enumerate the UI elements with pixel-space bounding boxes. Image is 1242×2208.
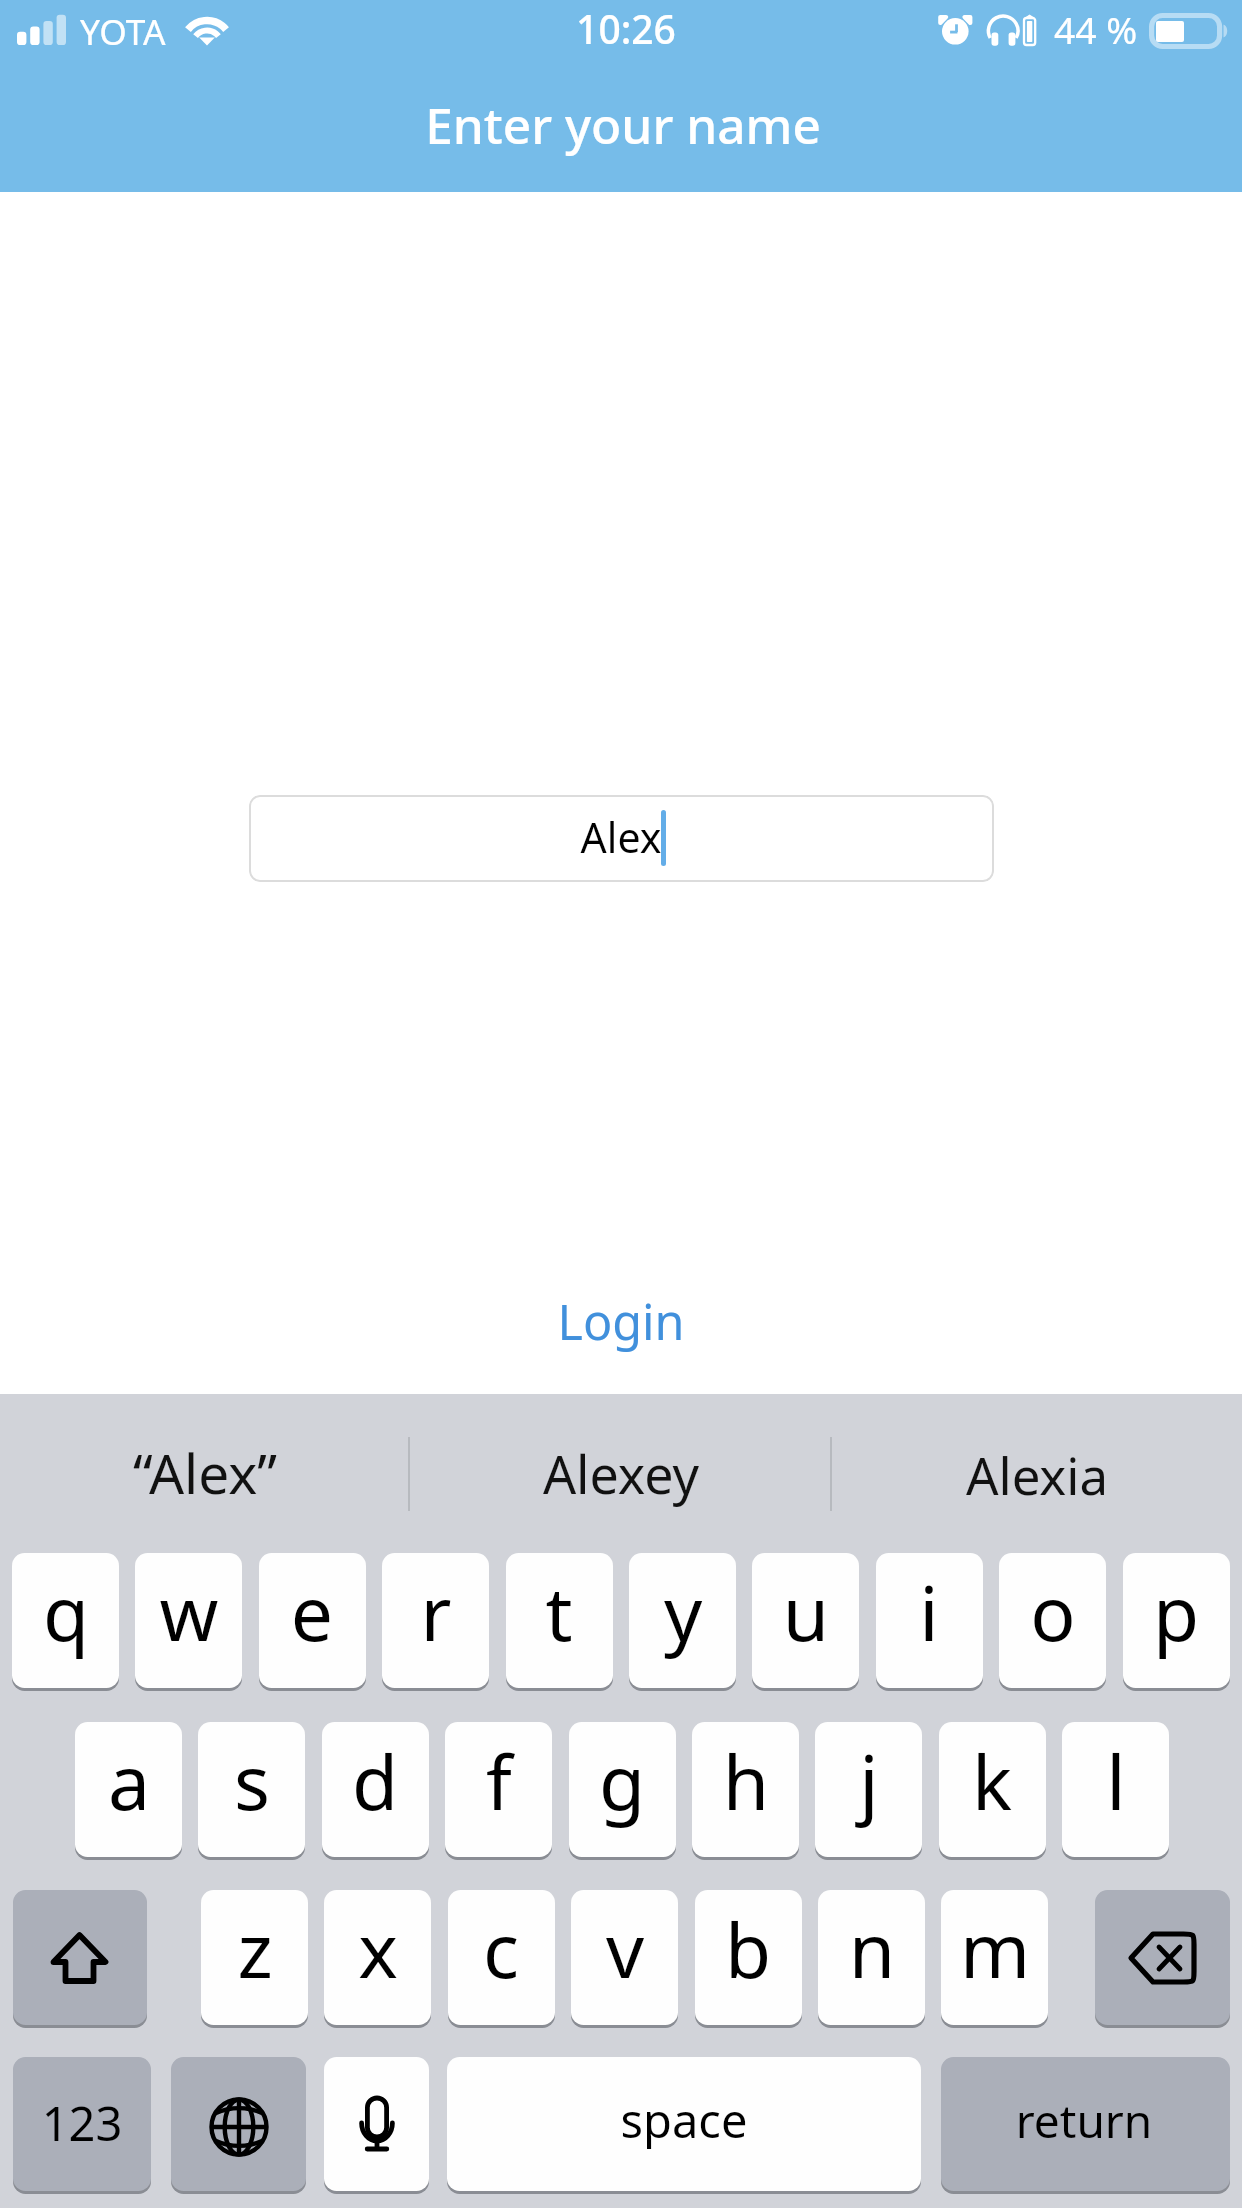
button[interactable] xyxy=(1123,1553,1230,1691)
button[interactable] xyxy=(0,1394,414,1544)
staticText: e xyxy=(212,1561,412,1663)
staticText: i xyxy=(829,1561,1029,1663)
button[interactable]: Change keyboard xyxy=(171,2057,306,2194)
button[interactable] xyxy=(201,1890,308,2028)
button[interactable] xyxy=(75,1722,182,1860)
button[interactable] xyxy=(818,1890,925,2028)
staticText: p xyxy=(1076,1561,1242,1663)
staticText: “Alex” xyxy=(0,1435,412,1510)
button[interactable] xyxy=(12,1553,119,1691)
staticText: t xyxy=(459,1561,659,1663)
button[interactable] xyxy=(198,1722,305,1860)
staticText: h xyxy=(646,1730,846,1832)
staticText: q xyxy=(0,1561,166,1663)
staticText: Enter your name xyxy=(2,91,1242,158)
button[interactable] xyxy=(259,1553,366,1691)
staticText: n xyxy=(772,1898,972,2000)
staticText: YOTA xyxy=(80,7,166,55)
staticText: d xyxy=(275,1730,475,1832)
staticText: 123 xyxy=(0,2091,282,2155)
button[interactable] xyxy=(569,1722,676,1860)
staticText: l xyxy=(1016,1730,1216,1832)
button[interactable] xyxy=(445,1722,552,1860)
staticText: Alex xyxy=(421,809,821,865)
button[interactable] xyxy=(135,1553,242,1691)
staticText: m xyxy=(895,1898,1095,2000)
staticText: b xyxy=(648,1898,848,2000)
button[interactable] xyxy=(876,1553,983,1691)
button[interactable] xyxy=(828,1394,1242,1544)
staticText: s xyxy=(152,1730,352,1832)
staticText: Alexia xyxy=(830,1440,1242,1509)
staticText: f xyxy=(399,1730,599,1832)
button[interactable] xyxy=(571,1890,678,2028)
button[interactable] xyxy=(322,1722,429,1860)
button[interactable] xyxy=(447,2057,921,2194)
staticText: 10:26 xyxy=(5,2,1242,55)
button[interactable] xyxy=(939,1722,1046,1860)
button[interactable] xyxy=(249,795,994,882)
button[interactable] xyxy=(695,1890,802,2028)
staticText: j xyxy=(769,1730,969,1832)
staticText: return xyxy=(884,2089,1242,2152)
button[interactable] xyxy=(382,1553,489,1691)
button[interactable]: Dictate xyxy=(324,2057,429,2194)
button[interactable] xyxy=(815,1722,922,1860)
staticText: space xyxy=(484,2088,884,2152)
button[interactable]: Backspace xyxy=(1095,1890,1230,2028)
staticText: g xyxy=(522,1730,722,1832)
button[interactable] xyxy=(414,1394,828,1544)
button[interactable] xyxy=(506,1553,613,1691)
staticText: x xyxy=(278,1898,478,2000)
button[interactable] xyxy=(752,1553,859,1691)
button[interactable] xyxy=(500,1288,742,1362)
button[interactable] xyxy=(448,1890,555,2028)
staticText: v xyxy=(525,1898,725,2000)
button[interactable] xyxy=(13,2057,151,2194)
staticText: k xyxy=(892,1730,1092,1832)
staticText: c xyxy=(401,1898,601,2000)
button[interactable] xyxy=(999,1553,1106,1691)
button[interactable] xyxy=(941,1890,1048,2028)
staticText: o xyxy=(953,1561,1153,1663)
button[interactable] xyxy=(1062,1722,1169,1860)
button[interactable] xyxy=(692,1722,799,1860)
staticText: w xyxy=(89,1561,289,1663)
staticText: Login xyxy=(0,1288,1242,1354)
staticText: r xyxy=(336,1561,536,1663)
button[interactable]: Shift xyxy=(13,1890,147,2028)
staticText: y xyxy=(583,1561,783,1663)
button[interactable] xyxy=(629,1553,736,1691)
staticText: u xyxy=(706,1561,906,1663)
staticText: z xyxy=(155,1898,355,2000)
button[interactable] xyxy=(941,2057,1230,2194)
staticText: a xyxy=(29,1730,229,1832)
button[interactable] xyxy=(324,1890,431,2028)
staticText: 44 % xyxy=(1054,4,1138,55)
staticText: Alexey xyxy=(414,1438,828,1509)
